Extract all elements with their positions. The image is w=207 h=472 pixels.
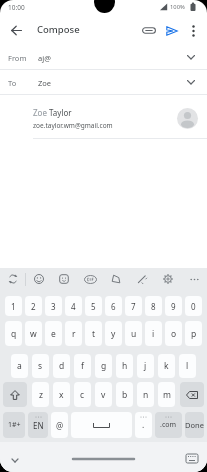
staticText: c	[80, 389, 85, 401]
staticText: 8	[151, 301, 156, 312]
button[interactable]: b	[116, 382, 133, 407]
button[interactable]: v	[95, 382, 112, 407]
button[interactable]: x	[53, 382, 70, 407]
button[interactable]: 7	[125, 296, 142, 316]
button[interactable]	[77, 268, 103, 290]
staticText: j	[144, 360, 147, 372]
staticText: q	[11, 328, 17, 340]
button[interactable]: d	[53, 354, 70, 378]
staticText: m	[163, 389, 171, 401]
button[interactable]: 3	[45, 296, 62, 316]
button[interactable]: 2	[25, 296, 42, 316]
button[interactable]	[129, 268, 155, 290]
button[interactable]	[155, 268, 181, 290]
button[interactable]: j	[137, 354, 154, 378]
staticText: 10:00	[8, 3, 25, 12]
button[interactable]: To	[0, 70, 207, 94]
button[interactable]: 8	[145, 296, 162, 316]
button[interactable]: e	[45, 321, 62, 346]
button[interactable]: .com	[155, 412, 182, 438]
button[interactable]: p	[185, 321, 202, 346]
staticText: t	[92, 328, 96, 340]
staticText: g	[101, 360, 107, 372]
button[interactable]: y	[105, 321, 122, 346]
button[interactable]: 9	[165, 296, 182, 316]
button[interactable]: 6	[105, 296, 122, 316]
button[interactable]: h	[116, 354, 133, 378]
staticText: h	[122, 360, 128, 372]
staticText: @	[56, 420, 64, 431]
staticText: l	[186, 360, 189, 372]
button[interactable]: n	[137, 382, 154, 407]
button[interactable]: @	[51, 412, 68, 438]
staticText: n	[143, 389, 149, 401]
staticText: EN	[33, 420, 44, 431]
staticText: zoe.taylor.wm@gmail.com	[33, 121, 113, 130]
button[interactable]	[160, 19, 183, 42]
staticText: Zoe Taylor	[33, 107, 72, 118]
staticText: To	[8, 78, 17, 88]
button[interactable]: l	[179, 354, 196, 378]
button[interactable]: a	[11, 354, 28, 378]
button[interactable]: g	[95, 354, 112, 378]
button[interactable]: 1#+	[3, 412, 25, 438]
button[interactable]	[51, 268, 77, 290]
staticText: i	[152, 328, 155, 340]
staticText: From	[8, 53, 27, 63]
staticText: s	[38, 360, 43, 372]
button[interactable]: f	[74, 354, 91, 378]
staticText: 1#+	[8, 420, 21, 430]
button[interactable]	[71, 412, 132, 438]
staticText: z	[39, 389, 43, 401]
staticText: 7	[131, 301, 136, 312]
staticText: aj@	[38, 53, 51, 63]
button[interactable]: 4	[65, 296, 82, 316]
staticText: 0	[191, 301, 196, 312]
staticText: x	[59, 389, 64, 401]
staticText: d	[59, 360, 65, 372]
button[interactable]	[137, 19, 160, 42]
button[interactable]: 0	[185, 296, 202, 316]
button[interactable]: r	[65, 321, 82, 346]
staticText: y	[111, 328, 116, 340]
button[interactable]	[103, 268, 129, 290]
button[interactable]: c	[74, 382, 91, 407]
staticText: f	[81, 360, 84, 372]
button[interactable]: 1	[5, 296, 22, 316]
button[interactable]: 5	[85, 296, 102, 316]
button[interactable]	[0, 268, 25, 290]
button[interactable]: i	[145, 321, 162, 346]
staticText: 2	[31, 301, 36, 312]
button[interactable]	[183, 21, 203, 41]
button[interactable]: Done	[185, 412, 204, 438]
staticText: w	[30, 328, 37, 340]
staticText: u	[131, 328, 137, 340]
staticText: 5	[91, 301, 96, 312]
button[interactable]: From	[0, 46, 207, 69]
staticText: e	[51, 328, 56, 340]
button[interactable]: Zoe Taylor	[0, 95, 207, 138]
button[interactable]: m	[158, 382, 175, 407]
button[interactable]: s	[32, 354, 49, 378]
button[interactable]: .	[135, 412, 152, 438]
button[interactable]: w	[25, 321, 42, 346]
button[interactable]: EN	[28, 412, 48, 438]
button[interactable]: q	[5, 321, 22, 346]
button[interactable]: k	[158, 354, 175, 378]
staticText: Done	[185, 420, 204, 430]
button[interactable]: o	[165, 321, 182, 346]
button[interactable]	[3, 382, 27, 407]
staticText: p	[191, 328, 197, 340]
staticText: 100%	[170, 3, 185, 11]
button[interactable]: u	[125, 321, 142, 346]
button[interactable]	[180, 382, 204, 407]
staticText: 6	[111, 301, 116, 312]
staticText: r	[72, 328, 76, 340]
button[interactable]	[26, 268, 51, 290]
staticText: .	[142, 419, 145, 431]
button[interactable]: t	[85, 321, 102, 346]
button[interactable]	[181, 268, 207, 290]
button[interactable]: z	[32, 382, 49, 407]
button[interactable]	[0, 14, 32, 46]
staticText: a	[17, 360, 22, 372]
